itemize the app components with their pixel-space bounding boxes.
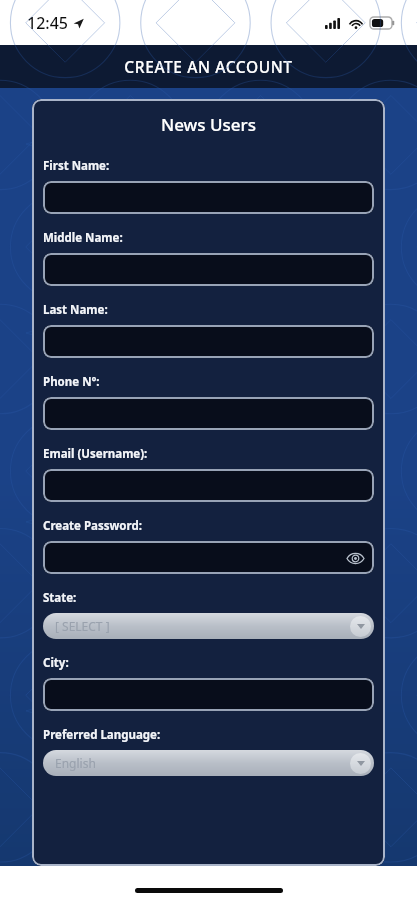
button[interactable]	[43, 253, 374, 286]
staticText: [ SELECT ]	[55, 618, 110, 634]
staticText: First Name:	[43, 158, 110, 174]
staticText: Preferred Language:	[43, 727, 161, 743]
staticText: City:	[43, 655, 69, 671]
button[interactable]: [ SELECT ]	[43, 613, 374, 639]
button[interactable]: Show password	[43, 541, 374, 574]
staticText: CREATE AN ACCOUNT	[124, 56, 293, 77]
other: Open Preferred Language: list	[350, 753, 371, 774]
button[interactable]: English	[43, 750, 374, 776]
staticText: Phone N°:	[43, 374, 100, 390]
other: Open State: list	[350, 616, 371, 637]
staticText: State:	[43, 590, 77, 606]
button[interactable]	[43, 397, 374, 430]
staticText: Create Password:	[43, 518, 142, 534]
staticText: News Users	[43, 113, 374, 136]
staticText: Last Name:	[43, 302, 108, 318]
button[interactable]	[43, 181, 374, 214]
staticText: English	[55, 755, 96, 771]
button[interactable]	[43, 469, 374, 502]
staticText: Email (Username):	[43, 446, 148, 462]
staticText: 12:45	[27, 12, 68, 34]
button[interactable]	[43, 325, 374, 358]
button[interactable]: Show password	[345, 548, 365, 568]
staticText: Middle Name:	[43, 230, 123, 246]
button[interactable]	[43, 678, 374, 711]
